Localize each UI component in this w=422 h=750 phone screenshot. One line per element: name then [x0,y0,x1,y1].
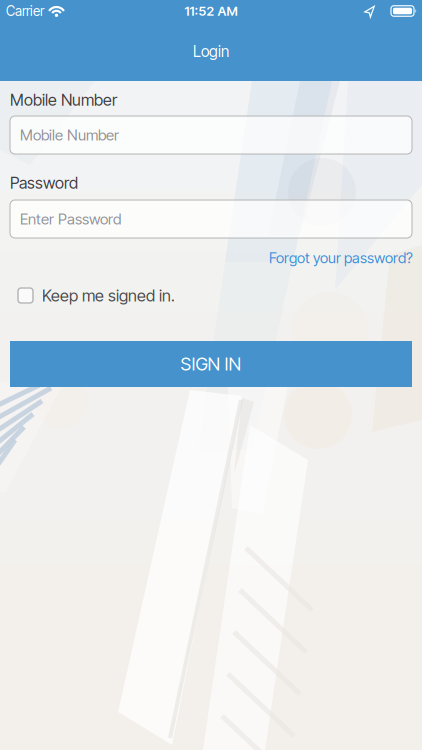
staticText: Forgot your password? [269,249,413,267]
staticText: Password [10,173,78,193]
staticText: Carrier [6,3,44,19]
staticText: Mobile Number [20,126,119,144]
staticText: 11:52 AM [184,3,237,19]
staticText: Keep me signed in. [42,286,175,305]
staticText: Enter Password [20,210,121,228]
staticText: Mobile Number [10,90,117,110]
staticText: Login [193,42,229,61]
staticText: SIGN IN [180,353,241,375]
